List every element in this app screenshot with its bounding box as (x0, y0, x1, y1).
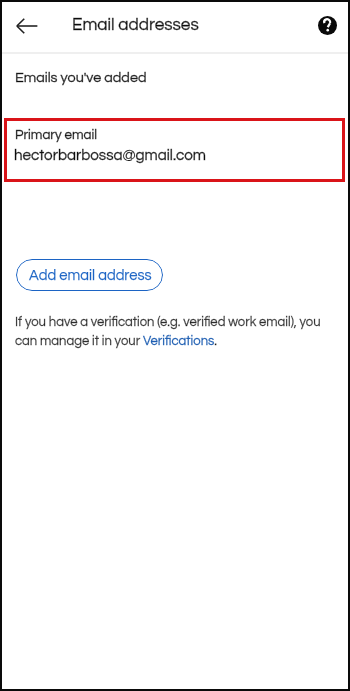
button[interactable]: Add email address (16, 259, 163, 291)
staticText: hectorbarbossa@gmail.com (14, 148, 207, 164)
staticText: Primary email (15, 128, 98, 142)
staticText: Primary email (15, 128, 98, 142)
staticText: Email addresses (72, 16, 199, 34)
staticText: Add email address (29, 268, 152, 283)
staticText: Emails you've added (15, 70, 147, 85)
button[interactable]: Back (4, 3, 50, 48)
staticText: hectorbarbossa@gmail.com (14, 148, 207, 164)
staticText: Add email address (29, 268, 152, 283)
staticText: If you have a verification (e.g. verifie… (15, 315, 330, 348)
staticText: Email addresses (72, 16, 199, 34)
button[interactable]: Help (305, 3, 350, 48)
staticText: Emails you've added (15, 70, 147, 85)
staticText: If you have a verification (e.g. verifie… (15, 315, 330, 348)
